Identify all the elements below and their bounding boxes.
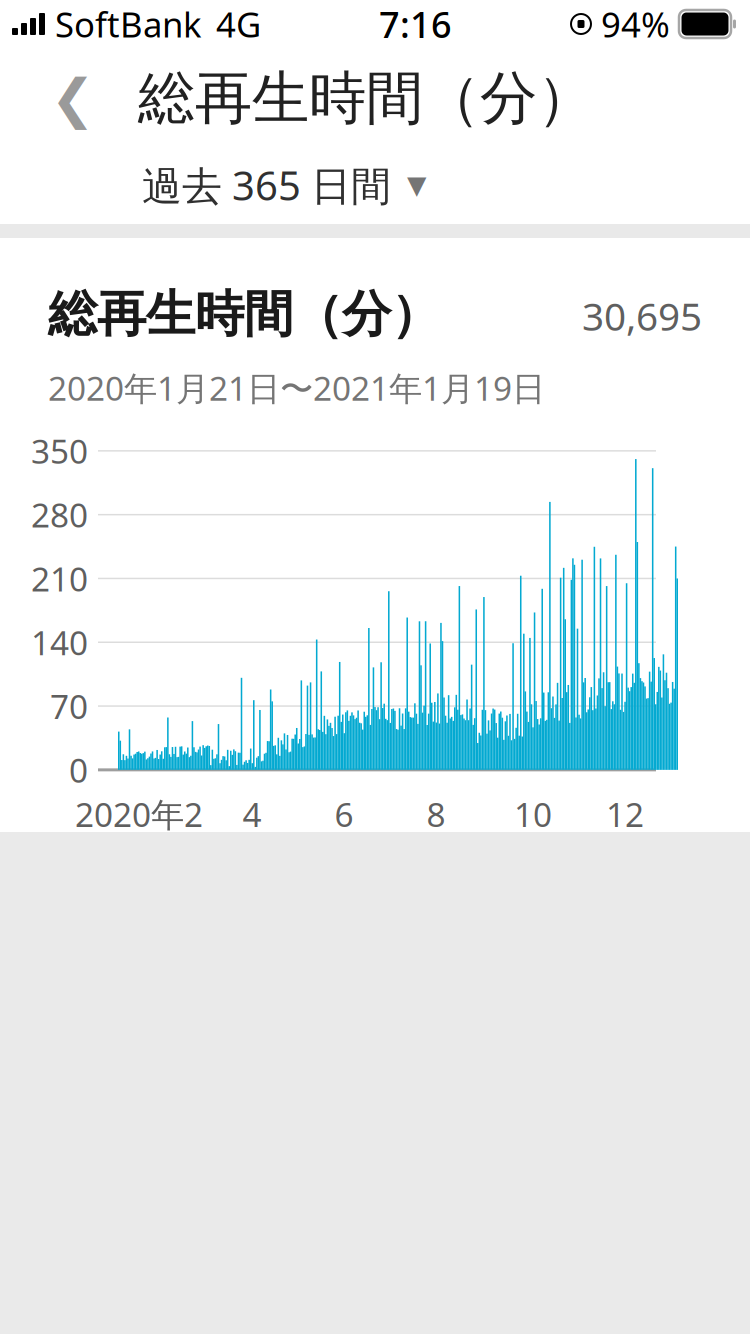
staticText: 4月 bbox=[242, 792, 275, 877]
staticText: 30,695 bbox=[582, 290, 702, 341]
button[interactable]: 戻る bbox=[40, 60, 106, 136]
staticText: SoftBank bbox=[55, 1, 202, 47]
staticText: 7:16 bbox=[379, 0, 452, 48]
staticText: 2020年1月21日〜2021年1月19日 bbox=[48, 366, 545, 410]
button[interactable]: 過去 365 日間 bbox=[138, 148, 430, 221]
staticText: 12月 bbox=[606, 792, 644, 877]
staticText: 350 bbox=[31, 429, 88, 473]
staticText: 94% bbox=[601, 1, 670, 47]
staticText: 280 bbox=[31, 492, 88, 537]
staticText: 総再生時間（分） bbox=[138, 63, 594, 134]
staticText: ▼ bbox=[407, 171, 426, 199]
staticText: 過去 365 日間 bbox=[142, 158, 391, 211]
staticText: 10月 bbox=[514, 792, 552, 877]
staticText: 4G bbox=[216, 1, 261, 47]
staticText: 70 bbox=[50, 684, 88, 728]
staticText: 210 bbox=[31, 556, 88, 601]
staticText: 0 bbox=[69, 748, 88, 792]
staticText: 8月 bbox=[426, 792, 459, 877]
staticText: 2020年2月 bbox=[75, 792, 203, 877]
staticText: ❮ bbox=[50, 68, 95, 129]
staticText: 140 bbox=[31, 620, 88, 664]
staticText: 総再生時間（分） bbox=[48, 284, 440, 345]
staticText: 6月 bbox=[334, 792, 367, 877]
